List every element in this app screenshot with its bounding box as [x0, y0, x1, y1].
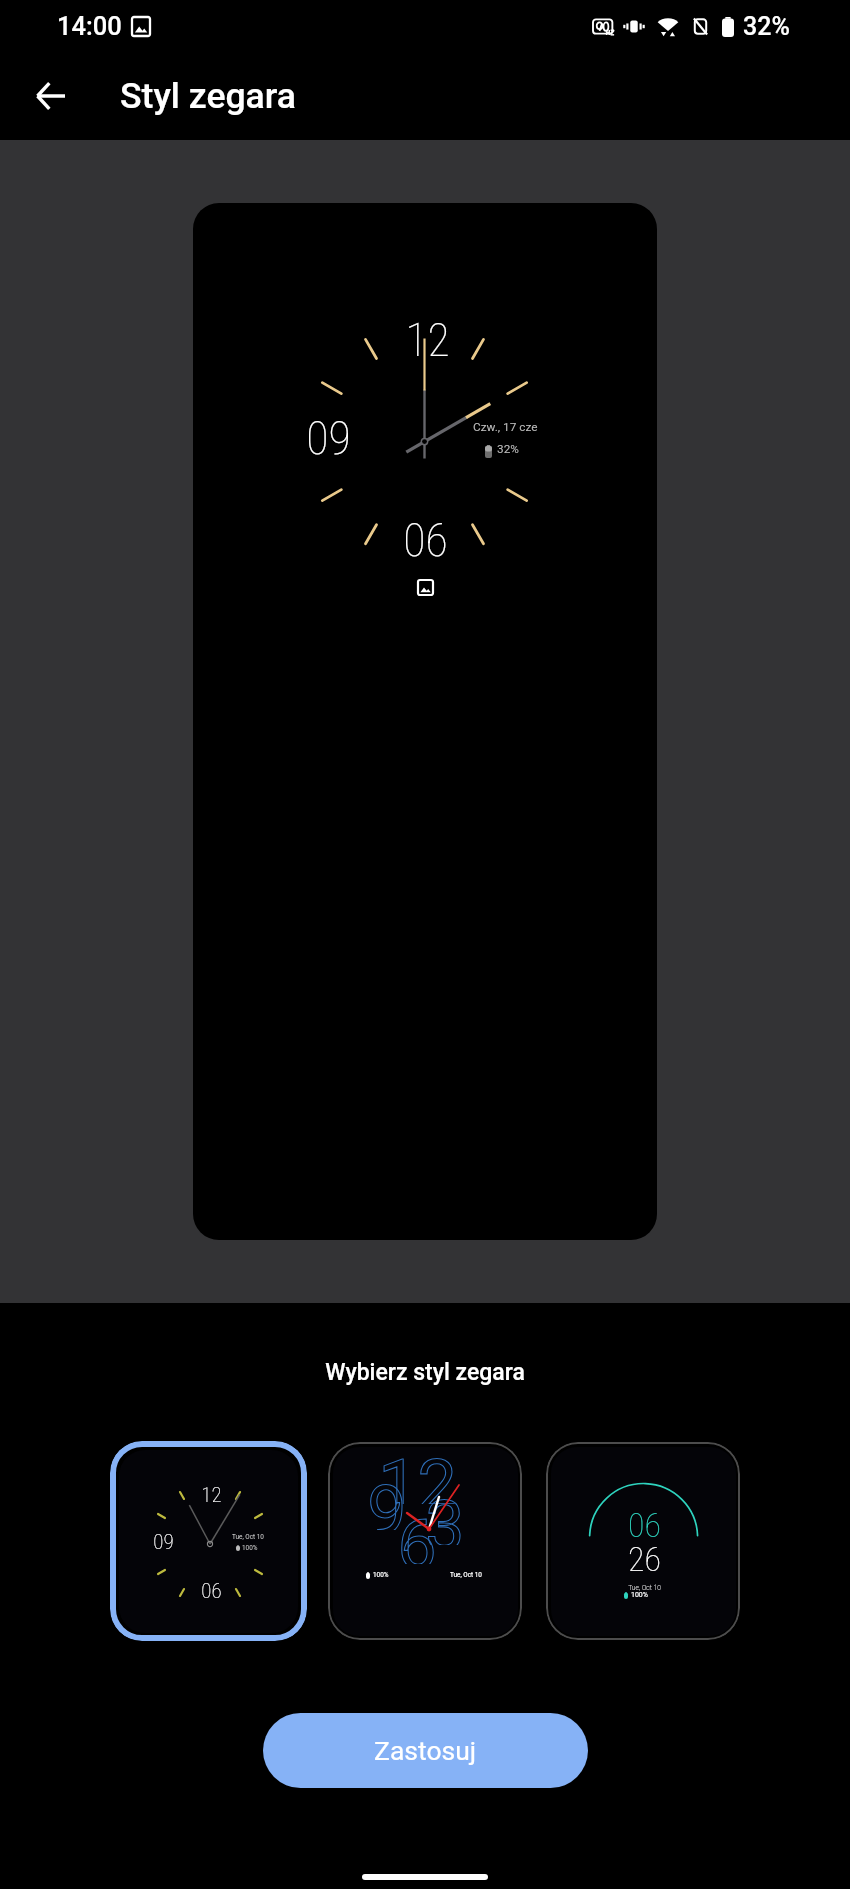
staticText: 12: [378, 1447, 457, 1504]
staticText: 09: [306, 411, 351, 465]
staticText: Zastosuj: [374, 1735, 477, 1766]
staticText: Tue, Oct 10: [628, 1583, 661, 1592]
staticText: 12: [201, 1483, 222, 1508]
staticText: Tue, Oct 10: [232, 1533, 264, 1541]
button[interactable]: 06: [546, 1442, 740, 1640]
button[interactable]: 12: [110, 1441, 307, 1641]
staticText: 09: [153, 1530, 174, 1555]
button[interactable]: Zastosuj: [263, 1713, 588, 1788]
staticText: 06: [201, 1579, 222, 1604]
staticText: Tue, Oct 10: [450, 1571, 482, 1579]
staticText: 3: [425, 1485, 465, 1545]
staticText: 06: [403, 513, 448, 567]
staticText: 9: [367, 1470, 407, 1530]
staticText: 100%: [631, 1591, 648, 1599]
staticText: 32%: [743, 12, 790, 41]
staticText: 6: [397, 1504, 437, 1564]
button[interactable]: 9: [328, 1442, 522, 1640]
staticText: Wybierz styl zegara: [0, 1359, 850, 1386]
staticText: 100%: [373, 1571, 389, 1579]
staticText: 12: [405, 313, 450, 367]
staticText: 26: [628, 1539, 661, 1579]
staticText: 32%: [497, 442, 519, 456]
staticText: Styl zegara: [120, 75, 296, 117]
staticText: 14:00: [57, 11, 122, 41]
staticText: Czw., 17 cze: [473, 420, 538, 434]
staticText: 100%: [242, 1544, 258, 1552]
staticText: 06: [628, 1505, 661, 1545]
button[interactable]: Back: [16, 62, 84, 130]
